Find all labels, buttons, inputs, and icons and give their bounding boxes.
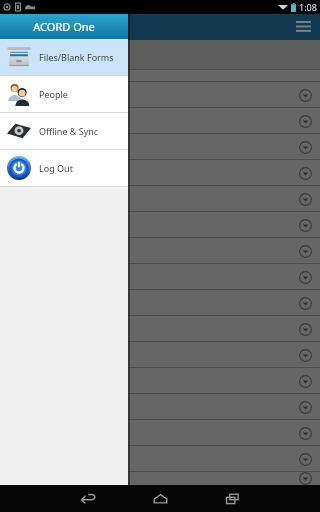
button[interactable]: Offline & Sync — [0, 113, 128, 149]
staticText: Files/Blank Forms — [39, 51, 114, 63]
button[interactable]: Expand row — [0, 82, 320, 107]
button[interactable]: Expand row — [295, 423, 315, 443]
button[interactable]: Expand row — [295, 85, 315, 105]
button[interactable]: Expand row — [0, 238, 320, 263]
button[interactable]: Expand row — [295, 137, 315, 157]
button[interactable]: Expand row — [295, 215, 315, 235]
button[interactable]: Expand row — [295, 111, 315, 131]
button[interactable]: Files/Blank Forms — [0, 39, 128, 75]
button[interactable]: Expand row — [0, 472, 320, 485]
button[interactable]: Expand row — [295, 472, 315, 485]
button[interactable]: Menu — [291, 15, 315, 39]
button[interactable]: Expand row — [295, 189, 315, 209]
button[interactable]: Expand row — [295, 449, 315, 469]
staticText: Offline & Sync — [39, 125, 99, 137]
button[interactable]: Expand row — [0, 264, 320, 289]
button[interactable]: Expand row — [295, 293, 315, 313]
button[interactable]: Expand row — [0, 342, 320, 367]
button[interactable]: People — [0, 76, 128, 112]
button[interactable]: Expand row — [0, 290, 320, 315]
button[interactable]: Expand row — [295, 241, 315, 261]
button[interactable]: Expand row — [295, 267, 315, 287]
button[interactable]: Expand row — [0, 160, 320, 185]
button[interactable]: Back — [52, 485, 124, 512]
button[interactable]: Expand row — [0, 394, 320, 419]
button[interactable]: Expand row — [0, 420, 320, 445]
staticText: Refresh — [1, 57, 27, 67]
button[interactable]: Expand row — [0, 186, 320, 211]
staticText: Log Out — [39, 162, 73, 174]
button[interactable]: Expand row — [0, 212, 320, 237]
button[interactable]: Expand row — [0, 134, 320, 159]
button[interactable]: Home — [124, 485, 196, 512]
button[interactable]: Expand row — [0, 108, 320, 133]
button[interactable]: Expand row — [295, 163, 315, 183]
button[interactable]: Log Out — [0, 150, 128, 186]
button[interactable]: Expand row — [295, 319, 315, 339]
staticText: ACORD One — [33, 19, 95, 34]
button[interactable]: Expand row — [295, 345, 315, 365]
button[interactable]: Expand row — [295, 371, 315, 391]
button[interactable]: Expand row — [0, 446, 320, 471]
staticText: 1:08 — [299, 1, 317, 13]
button[interactable]: Expand row — [0, 316, 320, 341]
button[interactable]: Expand row — [295, 397, 315, 417]
staticText: People — [39, 88, 68, 100]
button[interactable]: Recents — [196, 485, 268, 512]
button[interactable]: Expand row — [0, 368, 320, 393]
